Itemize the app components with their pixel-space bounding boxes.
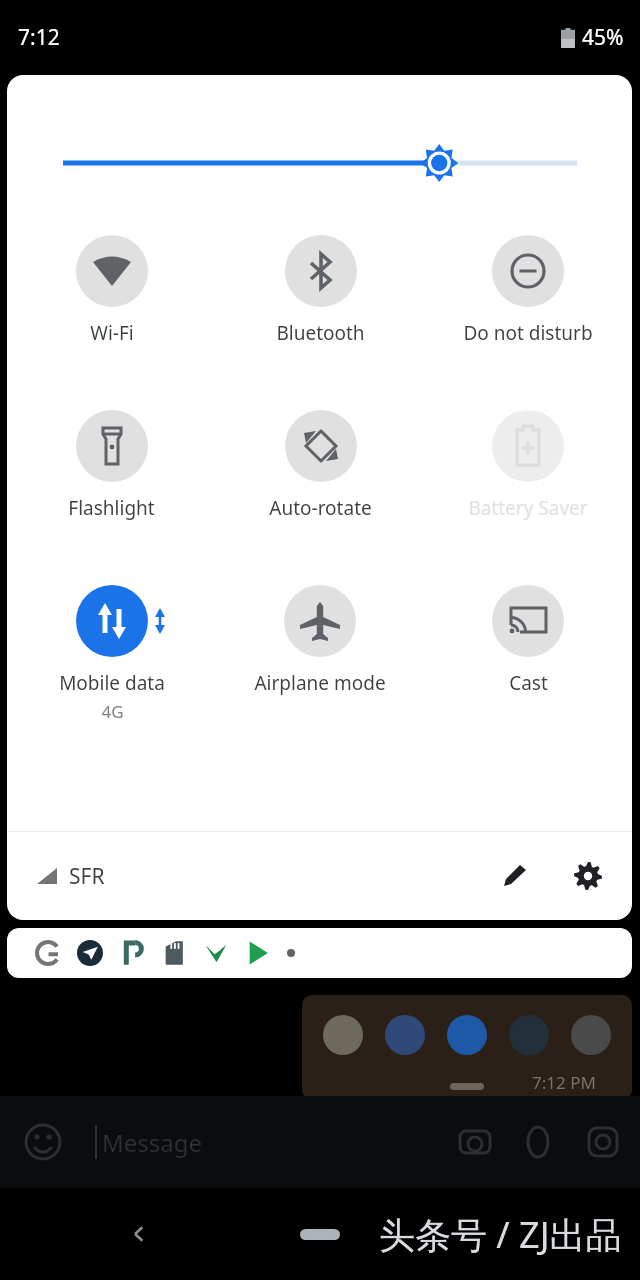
staticText: 7:12 (18, 23, 60, 52)
button[interactable]: Bluetooth (272, 235, 369, 346)
staticText: Bluetooth (276, 320, 365, 346)
staticText: Do not disturb (463, 320, 593, 346)
staticText: Airplane mode (254, 670, 386, 696)
staticText: Wi-Fi (90, 320, 134, 346)
other: Gallery (586, 1125, 620, 1159)
staticText: 45% (582, 23, 624, 52)
staticText: 头条号 / ZJ出品 (379, 1210, 622, 1259)
button[interactable]: Battery Saver (464, 410, 592, 521)
button[interactable]: Edit (492, 854, 536, 898)
button[interactable]: Mobile data (55, 585, 169, 723)
staticText: Cast (509, 670, 548, 696)
button[interactable]: Cast (488, 585, 568, 696)
staticText: Battery Saver (468, 495, 588, 521)
button[interactable]: Flashlight (64, 410, 159, 521)
staticText: Flashlight (68, 495, 155, 521)
button[interactable]: Wi-Fi (72, 235, 152, 346)
staticText: 7:12 PM (532, 1071, 596, 1094)
staticText: Auto-rotate (269, 495, 372, 521)
staticText: SFR (69, 862, 105, 891)
other: Attach (522, 1125, 556, 1159)
button[interactable]: Back (125, 1220, 153, 1248)
button[interactable]: Settings (566, 854, 610, 898)
button[interactable]: Home (300, 1229, 340, 1240)
button[interactable]: Auto-rotate (265, 410, 376, 521)
button[interactable]: Brightness (63, 143, 577, 183)
staticText: Mobile data (59, 670, 165, 696)
button[interactable]: Airplane mode (250, 585, 390, 696)
staticText: Message (102, 1126, 203, 1159)
button[interactable]: Do not disturb (459, 235, 597, 346)
button[interactable] (7, 928, 632, 978)
other: Camera (458, 1125, 492, 1159)
staticText: 4G (101, 700, 124, 723)
button[interactable]: SFR (35, 862, 105, 891)
